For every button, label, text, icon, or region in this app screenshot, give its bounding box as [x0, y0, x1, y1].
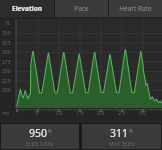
staticText: 275 — [2, 59, 11, 66]
staticText: 200 — [2, 87, 11, 94]
staticText: Pace — [74, 4, 89, 13]
staticText: 1.5 — [76, 110, 84, 117]
staticText: 2.0 — [97, 110, 105, 117]
staticText: 300 — [2, 49, 11, 56]
staticText: ft — [48, 127, 52, 134]
staticText: ft — [129, 127, 133, 134]
staticText: 1.0 — [55, 110, 63, 117]
button[interactable]: Pace — [55, 0, 108, 17]
staticText: ELEV GAIN — [26, 141, 54, 148]
button[interactable]: 311 — [82, 124, 161, 149]
staticText: 3.0 — [139, 110, 147, 117]
button[interactable]: Elevation — [0, 0, 54, 17]
staticText: 350 — [2, 30, 11, 37]
staticText: 2.5 — [118, 110, 126, 117]
button[interactable]: 950 — [1, 124, 79, 149]
staticText: ft — [6, 20, 10, 27]
staticText: 250 — [2, 68, 11, 75]
staticText: MAX ELEV — [109, 141, 135, 148]
staticText: Heart Rate — [119, 4, 152, 13]
staticText: 950 — [29, 126, 48, 140]
staticText: .5 — [34, 110, 39, 117]
staticText: 311 — [110, 126, 129, 140]
button[interactable]: Heart Rate — [109, 0, 162, 17]
staticText: 325 — [2, 40, 11, 47]
staticText: mi — [3, 110, 9, 117]
staticText: 225 — [2, 78, 11, 85]
staticText: Elevation — [12, 4, 42, 13]
